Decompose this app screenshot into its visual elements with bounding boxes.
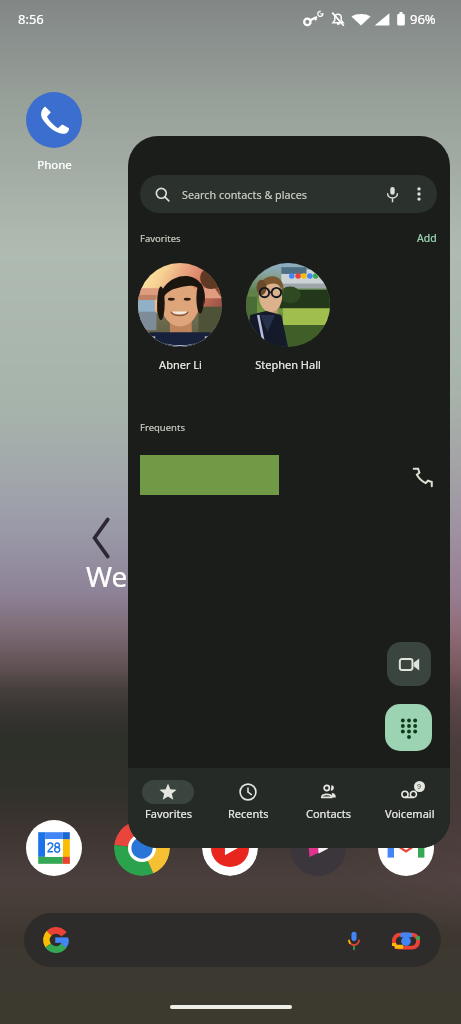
staticText: Recents xyxy=(228,806,269,821)
button[interactable]: App xyxy=(202,820,258,876)
button[interactable]: App xyxy=(114,820,170,876)
button[interactable]: App xyxy=(378,820,434,876)
button[interactable]: Add xyxy=(403,228,437,248)
staticText: 8:56 xyxy=(18,10,44,28)
staticText: 9 xyxy=(417,782,422,792)
staticText: Favorites xyxy=(145,806,192,821)
staticText: Search contacts & places xyxy=(182,187,308,202)
button[interactable]: Call xyxy=(405,459,437,491)
button[interactable]: App xyxy=(290,820,346,876)
button[interactable]: Abner Li xyxy=(128,263,242,372)
button[interactable]: Contacts xyxy=(288,768,369,821)
button[interactable]: Voice search xyxy=(346,930,362,951)
staticText: Favorites xyxy=(140,232,181,245)
button[interactable]: Recents xyxy=(208,768,288,821)
other: More options xyxy=(417,186,421,202)
staticText: Add xyxy=(417,231,437,245)
staticText: Abner Li xyxy=(159,357,202,372)
button[interactable]: Video call xyxy=(387,642,431,686)
button[interactable]: Stephen Hall xyxy=(226,263,350,372)
other: Voice search xyxy=(386,186,399,203)
button[interactable]: App xyxy=(26,820,82,876)
staticText: Voicemail xyxy=(385,806,435,821)
button[interactable]: Voice search xyxy=(24,913,441,967)
staticText: Frequents xyxy=(140,421,185,434)
button[interactable]: Dial pad xyxy=(385,704,432,751)
button[interactable]: Google Lens xyxy=(392,930,420,951)
staticText: 96% xyxy=(410,10,436,28)
staticText: Contacts xyxy=(306,806,352,821)
button[interactable]: Phone xyxy=(26,92,82,173)
staticText: Phone xyxy=(37,157,72,173)
button[interactable]: Favorites xyxy=(128,768,208,821)
button[interactable]: 9 xyxy=(369,768,450,821)
button[interactable]: Search contacts & places xyxy=(140,175,437,213)
staticText: Wed xyxy=(86,557,145,595)
staticText: Stephen Hall xyxy=(255,357,321,372)
